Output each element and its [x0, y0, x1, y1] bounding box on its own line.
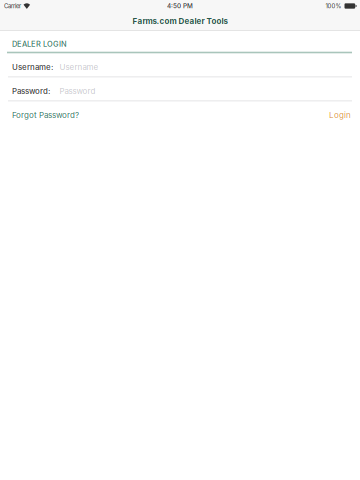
staticText: DEALER LOGIN — [12, 39, 67, 48]
staticText: Username: — [12, 62, 53, 72]
button[interactable]: Username: — [0, 53, 360, 76]
staticText: Forgot Password? — [12, 110, 79, 120]
staticText: 100% — [325, 2, 341, 10]
staticText: Username — [60, 62, 99, 72]
staticText: Password — [60, 86, 96, 96]
staticText: 4:50 PM — [167, 2, 193, 10]
button[interactable]: Password: — [0, 77, 360, 100]
button[interactable]: Login — [300, 101, 360, 124]
staticText: Farms.com Dealer Tools — [132, 16, 227, 26]
staticText: Password: — [12, 86, 50, 96]
button[interactable]: Forgot Password? — [0, 101, 150, 124]
staticText: Login — [329, 110, 351, 120]
staticText: Carrier — [4, 2, 21, 10]
